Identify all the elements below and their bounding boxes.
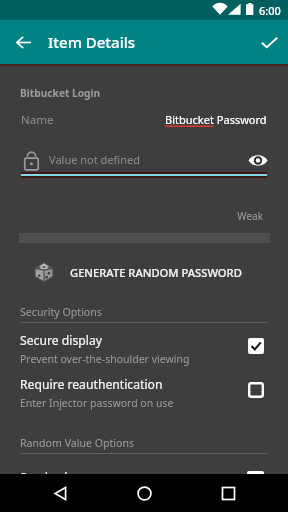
- button[interactable]: Secure display: [0, 327, 288, 371]
- button[interactable]: GENERATE RANDOM PASSWORD: [0, 255, 288, 289]
- button[interactable]: Navigate up: [1, 20, 45, 64]
- staticText: Security Options: [20, 305, 102, 319]
- staticText: Seed value: [20, 469, 82, 486]
- button[interactable]: Show password: [244, 146, 272, 174]
- staticText: Bitbucket Login: [20, 86, 101, 100]
- staticText: Weak: [0, 209, 263, 223]
- staticText: Name: [21, 112, 54, 128]
- staticText: Enter Injector password on use: [20, 396, 174, 410]
- staticText: Bitbucket: [165, 112, 214, 127]
- staticText: Value not defined: [49, 152, 140, 167]
- staticText: GENERATE RANDOM PASSWORD: [70, 265, 242, 280]
- staticText: Prevent over-the-shoulder viewing: [20, 352, 190, 366]
- staticText: Password: [214, 112, 267, 127]
- button[interactable]: Home: [120, 474, 168, 512]
- staticText: Require reauthentication: [20, 376, 163, 393]
- button[interactable]: Back: [36, 474, 84, 512]
- button[interactable]: Require reauthentication: [0, 371, 288, 415]
- staticText: 6:00: [259, 3, 281, 18]
- staticText: Item Details: [48, 32, 136, 52]
- staticText: Secure display: [20, 332, 102, 349]
- button[interactable]: Recent apps: [204, 474, 252, 512]
- button[interactable]: Save: [247, 20, 288, 64]
- staticText: Random Value Options: [20, 436, 135, 450]
